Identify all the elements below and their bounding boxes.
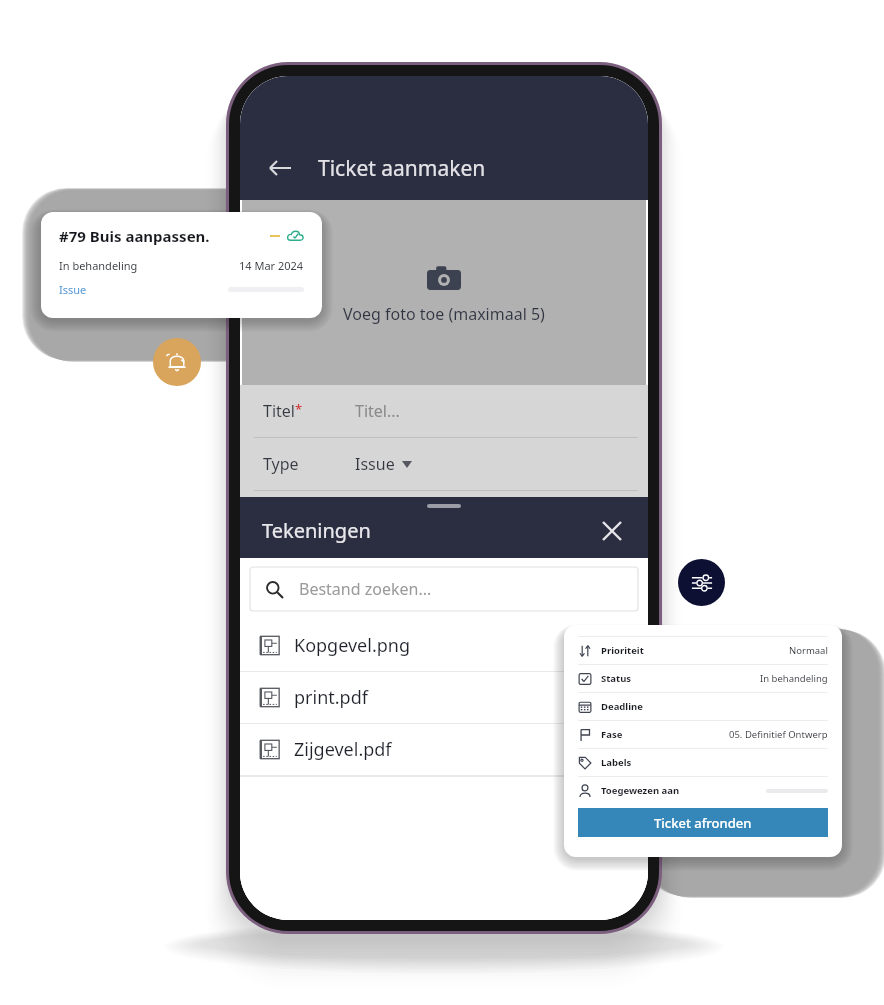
button[interactable]: Ticket afronden bbox=[578, 808, 828, 837]
button[interactable]: Type bbox=[240, 438, 648, 490]
staticText: Ticket aanmaken bbox=[318, 154, 486, 183]
button[interactable]: Kopgevel.png bbox=[240, 620, 648, 671]
staticText: Normaal bbox=[789, 644, 828, 657]
button[interactable]: Voeg foto toe (maximaal 5) bbox=[242, 200, 646, 385]
staticText: Toegewezen aan bbox=[601, 784, 680, 797]
button[interactable]: Titel bbox=[240, 385, 648, 437]
button[interactable]: #79 Buis aanpassen. bbox=[41, 212, 322, 318]
button[interactable]: Labels bbox=[578, 749, 828, 776]
button[interactable]: Settings bbox=[678, 559, 725, 606]
staticText: print.pdf bbox=[294, 685, 368, 710]
staticText: * bbox=[295, 400, 303, 418]
staticText: Voeg foto toe (maximaal 5) bbox=[343, 303, 545, 325]
staticText: Deadline bbox=[601, 700, 643, 713]
staticText: Ticket afronden bbox=[654, 814, 752, 832]
staticText: Tekeningen bbox=[262, 517, 371, 544]
staticText: Fase bbox=[601, 728, 623, 741]
staticText: Titel bbox=[263, 400, 295, 422]
staticText: #79 Buis aanpassen. bbox=[59, 226, 210, 246]
button[interactable]: Fase bbox=[578, 721, 828, 748]
button[interactable]: Zijgevel.pdf bbox=[240, 724, 648, 775]
staticText: 14 Mar 2024 bbox=[239, 258, 304, 273]
button[interactable]: Status bbox=[578, 665, 828, 692]
button[interactable]: Bestand zoeken... bbox=[250, 567, 638, 611]
staticText: In behandeling bbox=[760, 672, 828, 685]
staticText: Labels bbox=[601, 756, 632, 769]
staticText: Bestand zoeken... bbox=[299, 578, 432, 600]
button[interactable]: Back bbox=[262, 150, 298, 186]
button[interactable]: Notifications bbox=[153, 338, 201, 386]
button[interactable]: Prioriteit bbox=[578, 637, 828, 664]
staticText: Issue bbox=[355, 453, 395, 475]
staticText: Kopgevel.png bbox=[294, 633, 410, 658]
staticText: Prioriteit bbox=[601, 644, 644, 657]
staticText: Type bbox=[263, 453, 299, 475]
staticText: In behandeling bbox=[59, 258, 138, 273]
staticText: Issue bbox=[59, 282, 87, 297]
button[interactable]: Toegewezen aan bbox=[578, 777, 828, 804]
button[interactable]: Close bbox=[596, 515, 628, 547]
staticText: Zijgevel.pdf bbox=[294, 737, 392, 762]
button[interactable]: Deadline bbox=[578, 693, 828, 720]
staticText: 05. Definitief Ontwerp bbox=[729, 728, 828, 741]
staticText: Titel... bbox=[355, 400, 400, 422]
staticText: Status bbox=[601, 672, 632, 685]
button[interactable]: print.pdf bbox=[240, 672, 648, 723]
